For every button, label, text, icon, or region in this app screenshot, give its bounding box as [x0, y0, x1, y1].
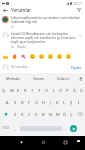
staticText: kisiadi123 Bimaktasinin cok harikaydim, …: [11, 32, 77, 44]
button[interactable]: P: [64, 84, 71, 96]
staticText: R: [24, 88, 27, 93]
staticText: J: [50, 100, 52, 105]
staticText: Yorum ekle...: [11, 65, 30, 69]
staticText: X: [21, 112, 24, 117]
button[interactable]: N: [47, 108, 54, 120]
staticText: F: [28, 100, 31, 105]
button[interactable]: E: [15, 84, 22, 96]
button[interactable]: K: [54, 96, 61, 108]
staticText: Ö: [63, 112, 67, 117]
staticText: W: [10, 88, 14, 93]
staticText: 12:11: [73, 1, 83, 6]
staticText: A: [6, 100, 9, 105]
staticText: Ç: [70, 112, 73, 117]
staticText: U: [45, 88, 48, 93]
staticText: G: [35, 100, 38, 105]
staticText: E: [17, 88, 20, 93]
staticText: M: [56, 112, 60, 117]
button[interactable]: V: [33, 108, 40, 120]
button[interactable]: Switch keyboard: [74, 136, 83, 145]
button[interactable]: U: [43, 84, 50, 96]
button[interactable]: Voice input: [76, 73, 85, 84]
staticText: O: [59, 88, 63, 93]
button[interactable]: Home: [37, 136, 49, 148]
button[interactable]: ?123: [0, 120, 11, 136]
button[interactable]: B: [40, 108, 47, 120]
staticText: K: [56, 100, 59, 105]
button[interactable]: Emoji reaction: [20, 53, 27, 60]
button[interactable]: G: [33, 96, 40, 108]
staticText: Merhaba: [6, 77, 20, 81]
button[interactable]: H: [40, 96, 47, 108]
button[interactable]: L: [61, 96, 68, 108]
button[interactable]: Emoji reaction: [38, 53, 45, 60]
button[interactable]: Back: [15, 136, 27, 148]
staticText: Yorumlar: [11, 7, 32, 13]
button[interactable]: Like: [77, 32, 84, 39]
button[interactable]: Ç: [68, 108, 75, 120]
button[interactable]: Y: [36, 84, 43, 96]
button[interactable]: S: [11, 96, 19, 108]
button[interactable]: Recents: [59, 136, 71, 148]
button[interactable]: Backspace: [75, 108, 85, 120]
button[interactable]: Ü: [78, 84, 85, 96]
button[interactable]: Emoji reaction: [11, 53, 18, 60]
staticText: P: [66, 88, 69, 93]
staticText: H: [42, 100, 45, 105]
button[interactable]: ,: [11, 120, 20, 136]
staticText: İ: [78, 100, 80, 105]
button[interactable]: Ş: [68, 96, 75, 108]
button[interactable]: Kullanici: [51, 73, 76, 84]
button[interactable]: M: [54, 108, 61, 120]
button[interactable]: W: [8, 84, 15, 96]
button[interactable]: I: [50, 84, 57, 96]
staticText: N: [49, 112, 53, 117]
button[interactable]: Emoji reaction: [29, 53, 36, 60]
button[interactable]: Emoji reaction: [2, 53, 9, 60]
button[interactable]: Z: [11, 108, 19, 120]
staticText: V: [35, 112, 38, 117]
staticText: 2s: [11, 25, 14, 29]
button[interactable]: Tamam: [26, 73, 51, 84]
button[interactable]: Emoji reaction: [65, 53, 72, 60]
button[interactable]: D: [19, 96, 26, 108]
staticText: Paylas: [71, 65, 82, 69]
button[interactable]: Ğ: [71, 84, 78, 96]
button[interactable]: Filter: [75, 6, 83, 14]
button[interactable]: Emoji reaction: [47, 53, 54, 60]
button[interactable]: Merhaba: [0, 73, 26, 84]
staticText: ,: [15, 126, 17, 131]
button[interactable]: C: [26, 108, 33, 120]
staticText: D: [21, 100, 24, 105]
staticText: ?123: [2, 126, 9, 130]
button[interactable]: R: [22, 84, 29, 96]
button[interactable]: İ: [75, 96, 82, 108]
staticText: T: [31, 88, 34, 93]
button[interactable]: Ö: [61, 108, 68, 120]
button[interactable]: Shift: [0, 108, 11, 120]
staticText: Y: [38, 88, 41, 93]
staticText: C: [28, 112, 31, 117]
button[interactable]: Paylas: [70, 64, 83, 70]
staticText: Z: [14, 112, 17, 117]
staticText: Kullanici: [57, 77, 70, 81]
staticText: Yanitla: [17, 45, 26, 49]
button[interactable]: Emoji reaction: [56, 53, 63, 60]
staticText: Tamam: [33, 77, 45, 81]
button[interactable]: X: [19, 108, 26, 120]
button[interactable]: F: [26, 96, 33, 108]
staticText: kullaniciadiburada bu yorumlarin nasil o…: [11, 16, 83, 24]
button[interactable]: O: [57, 84, 64, 96]
staticText: Ş: [70, 100, 73, 105]
button[interactable]: Q: [0, 84, 8, 96]
staticText: .: [65, 126, 67, 131]
button[interactable]: Back: [1, 6, 9, 14]
staticText: Ğ: [73, 88, 76, 93]
staticText: L: [63, 100, 66, 105]
button[interactable]: J: [47, 96, 54, 108]
button[interactable]: T: [29, 84, 36, 96]
button[interactable]: A: [3, 96, 11, 108]
button[interactable]: Send: [70, 125, 77, 132]
